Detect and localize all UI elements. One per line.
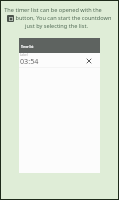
button[interactable]: Timer list — [19, 38, 100, 53]
button[interactable]: Timer list — [7, 15, 14, 22]
staticText: just by selecting the list. — [25, 22, 88, 30]
staticText: 03:54 — [20, 56, 39, 66]
button[interactable]: Close — [82, 54, 95, 67]
staticText: The timer list can be opened with the — [4, 6, 102, 14]
staticText: Timer list — [21, 45, 34, 49]
staticText: Label — [20, 53, 28, 57]
staticText: button, You can start the countdown — [14, 14, 112, 22]
